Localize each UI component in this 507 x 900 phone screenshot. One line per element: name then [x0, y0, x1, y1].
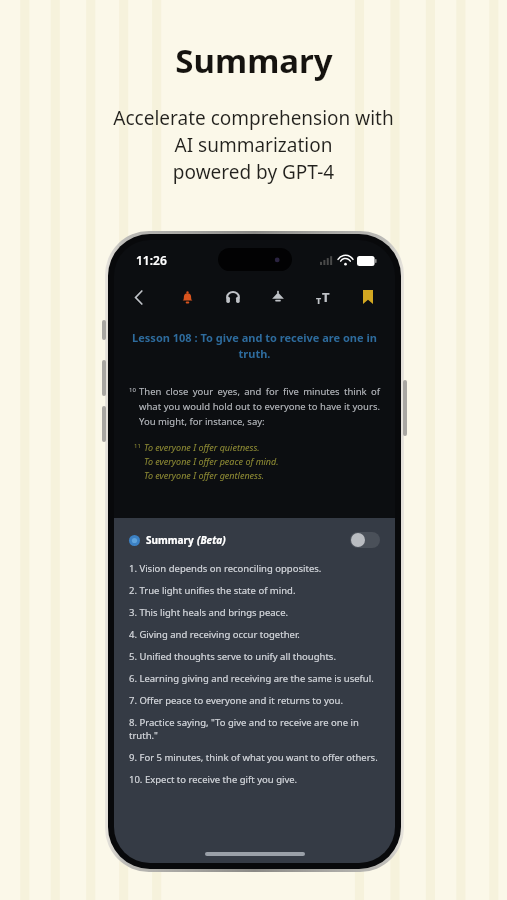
staticText: 11:26 [136, 252, 167, 268]
staticText: Accelerate comprehension with AI summari… [0, 105, 507, 185]
button[interactable]: 3. This light heals and brings peace. [114, 606, 395, 619]
button[interactable]: Font size [310, 284, 336, 310]
staticText: To everyone I offer quietness. To everyo… [144, 441, 279, 482]
button[interactable]: Summary [129, 532, 380, 548]
staticText: Lesson 108 : To give and to receive are … [128, 330, 381, 361]
button[interactable]: 9. For 5 minutes, think of what you want… [114, 751, 395, 764]
staticText: Then close your eyes, and for five minut… [139, 385, 380, 428]
button[interactable]: 4. Giving and receiving occur together. [114, 628, 395, 641]
button[interactable]: 10. Expect to receive the gift you give. [114, 773, 395, 786]
button[interactable]: Back [124, 282, 154, 312]
staticText: T [322, 288, 330, 306]
staticText: Summary [146, 533, 197, 547]
button[interactable]: Listen [220, 284, 246, 310]
staticText: (Beta) [197, 533, 226, 547]
button[interactable]: 2. True light unifies the state of mind. [114, 584, 395, 597]
staticText: Summary [175, 38, 333, 83]
staticText: T [316, 294, 322, 306]
button[interactable]: 8. Practice saying, "To give and to rece… [114, 716, 395, 742]
button[interactable]: 1. Vision depends on reconciling opposit… [114, 562, 395, 575]
button[interactable]: Notifications [174, 284, 200, 310]
button[interactable]: Bookmark [355, 284, 381, 310]
staticText: 10 [129, 386, 136, 394]
button[interactable]: 5. Unified thoughts serve to unify all t… [114, 650, 395, 663]
staticText: 11 [134, 442, 141, 450]
button[interactable]: Theme [265, 284, 291, 310]
button[interactable]: 7. Offer peace to everyone and it return… [114, 694, 395, 707]
button[interactable]: 6. Learning giving and receiving are the… [114, 672, 395, 685]
button[interactable]: Toggle summary [350, 532, 380, 548]
